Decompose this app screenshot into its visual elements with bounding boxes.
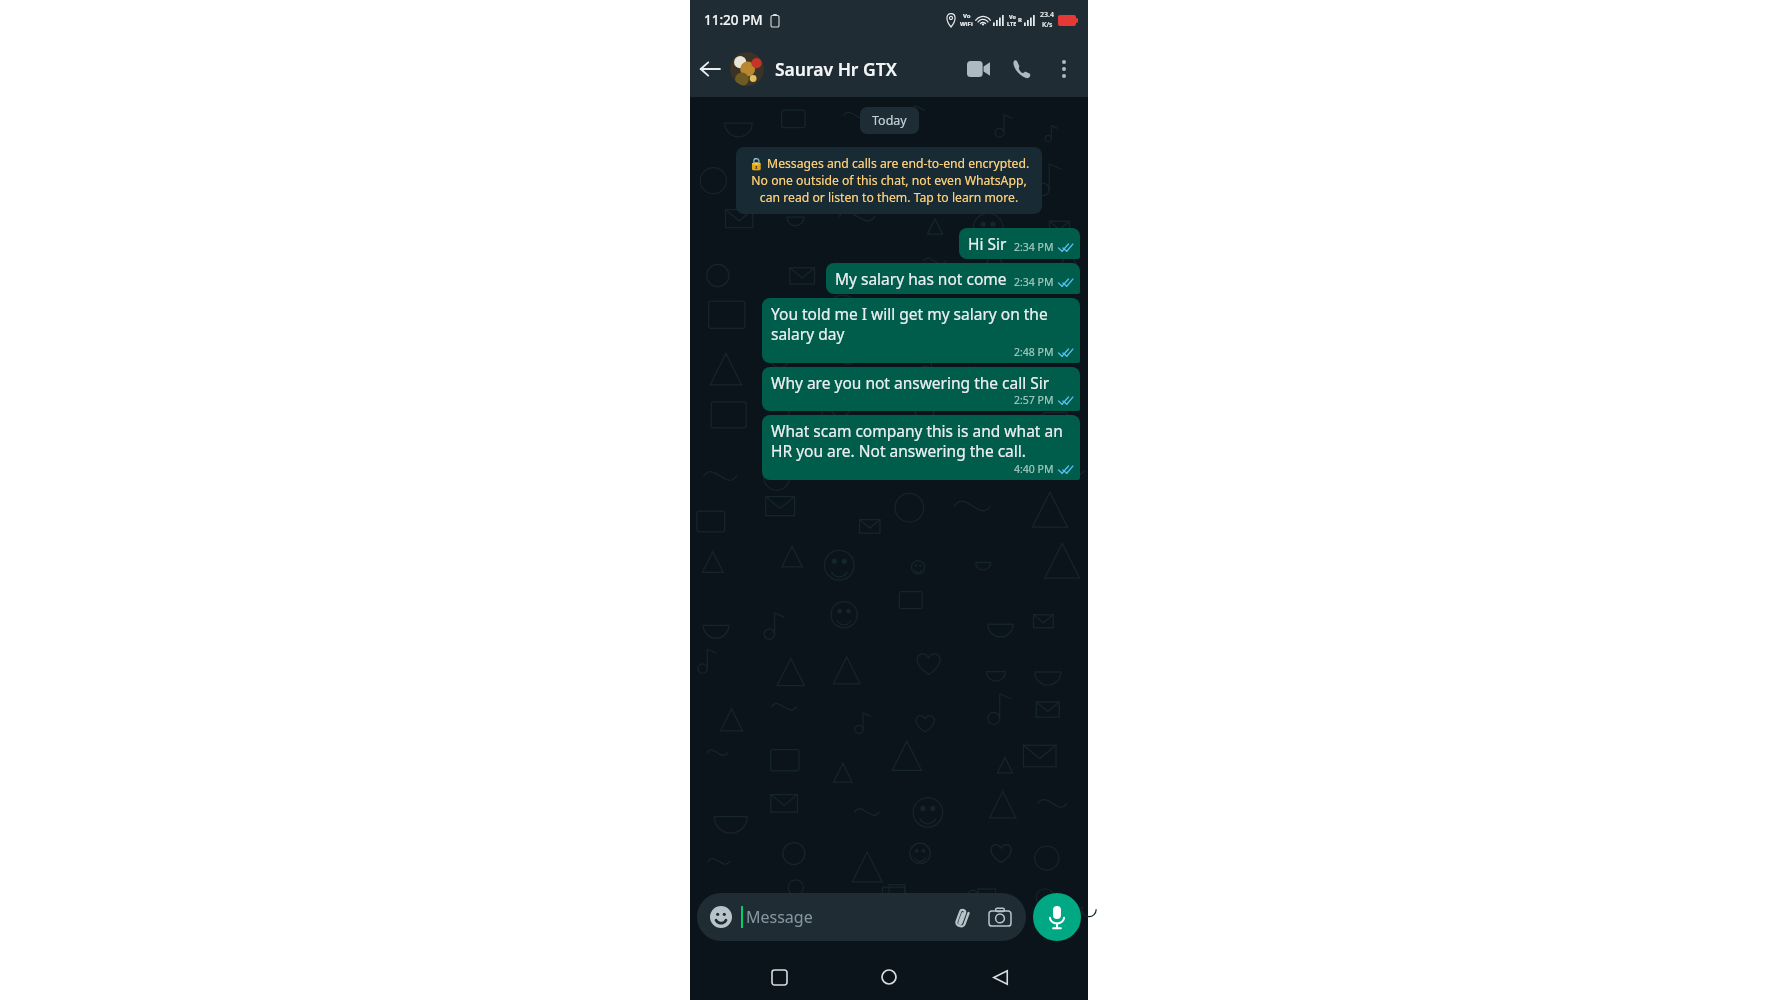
staticText: Saurav Hr GTX — [775, 57, 897, 81]
button[interactable]: More options — [1044, 49, 1084, 89]
button[interactable]: Hi Sir — [959, 228, 1080, 259]
button[interactable]: Attach — [947, 902, 977, 932]
button[interactable]: Profile photo — [730, 52, 764, 86]
staticText: Vo — [1009, 13, 1016, 20]
button[interactable]: Back — [978, 955, 1022, 999]
staticText: 23.4 — [1040, 10, 1054, 20]
staticText: Vo — [963, 12, 971, 20]
button[interactable]: Voice call — [1000, 47, 1044, 91]
button[interactable]: Home — [867, 955, 911, 999]
button[interactable]: Emoji — [708, 904, 734, 930]
button[interactable]: Recent apps — [757, 955, 801, 999]
button[interactable]: Voice message — [1033, 893, 1081, 941]
staticText: Today — [872, 112, 907, 129]
staticText: Hi Sir — [968, 233, 1007, 254]
staticText: Message — [746, 906, 813, 928]
staticText: 2:48 PM — [1014, 345, 1054, 359]
staticText: 2:57 PM — [1014, 393, 1054, 407]
staticText: K/s — [1042, 20, 1053, 30]
button[interactable]: Back — [690, 49, 730, 89]
staticText: LTE — [1007, 20, 1017, 27]
staticText: What scam company this is and what an HR… — [771, 420, 1073, 462]
button[interactable]: My salary has not come — [826, 263, 1080, 294]
staticText: My salary has not come — [835, 268, 1007, 289]
button[interactable]: 🔒 Messages and calls are end-to-end encr… — [736, 147, 1042, 214]
button[interactable]: Saurav Hr GTX — [775, 40, 956, 97]
button[interactable]: Video call — [956, 47, 1000, 91]
button[interactable]: You told me I will get my salary on the … — [762, 298, 1080, 363]
staticText: Why are you not answering the call Sir — [771, 372, 1050, 393]
button[interactable]: Today — [860, 107, 919, 134]
staticText: 4:40 PM — [1014, 462, 1054, 476]
staticText: WiFi — [960, 20, 973, 28]
button[interactable]: Why are you not answering the call Sir — [762, 367, 1080, 411]
button[interactable]: Emoji — [697, 893, 1026, 941]
staticText: R — [1018, 16, 1022, 24]
staticText: 11:20 PM — [704, 11, 763, 29]
button[interactable]: Camera — [985, 902, 1015, 932]
staticText: 2:34 PM — [1014, 240, 1054, 254]
staticText: You told me I will get my salary on the … — [771, 303, 1073, 345]
staticText: 2:34 PM — [1014, 275, 1054, 289]
staticText: 🔒 Messages and calls are end-to-end encr… — [747, 155, 1031, 206]
button[interactable]: What scam company this is and what an HR… — [762, 415, 1080, 480]
